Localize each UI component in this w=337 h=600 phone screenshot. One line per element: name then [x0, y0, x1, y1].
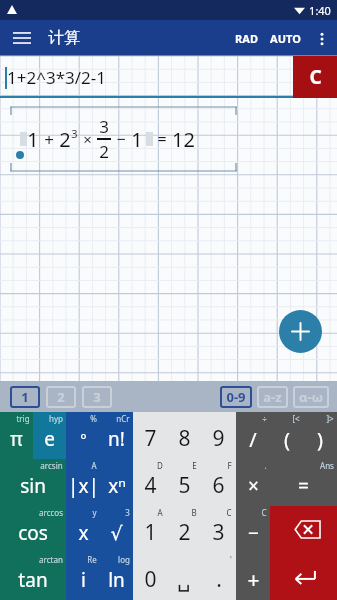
staticText: . — [264, 460, 267, 471]
staticText: 3 — [93, 388, 101, 406]
button[interactable]: trig — [0, 412, 33, 459]
button[interactable]: C — [201, 506, 236, 553]
staticText: hyp — [49, 413, 63, 424]
button[interactable]: Add — [279, 310, 322, 353]
button[interactable]: ' — [201, 553, 236, 600]
staticText: ÷ — [262, 413, 267, 424]
staticText: 0-9 — [226, 388, 246, 406]
staticText: ' — [230, 554, 232, 565]
staticText: C — [261, 507, 267, 518]
staticText: 2 — [57, 388, 65, 406]
button[interactable]: ␣ — [167, 553, 201, 600]
button[interactable]: A — [66, 459, 100, 506]
staticText: π — [10, 426, 23, 452]
button[interactable]: xⁿ — [100, 459, 133, 506]
button[interactable]: RAD — [229, 23, 264, 54]
staticText: 6 — [212, 471, 225, 500]
staticText: 1:40 — [309, 3, 331, 18]
button[interactable]: log — [100, 553, 133, 600]
button[interactable]: nCr — [100, 412, 133, 459]
staticText: × — [248, 473, 259, 499]
button[interactable]: hyp — [33, 412, 66, 459]
staticText: 3 — [99, 115, 109, 138]
staticText: 9 — [212, 424, 225, 453]
button[interactable]: 1 — [10, 386, 40, 408]
button[interactable]: AUTO — [264, 23, 307, 54]
staticText: = — [298, 473, 309, 499]
button[interactable]: F — [201, 459, 236, 506]
button[interactable]: α-ω — [293, 386, 329, 408]
staticText: 2 — [178, 518, 191, 547]
button[interactable]: A — [133, 506, 167, 553]
staticText: cos — [18, 520, 48, 546]
button[interactable]: ]> — [303, 412, 337, 459]
staticText: 1 — [27, 126, 39, 153]
button[interactable]: 8 — [167, 412, 201, 459]
staticText: + — [44, 128, 54, 151]
staticText: |x| — [68, 473, 99, 499]
button[interactable]: B — [167, 506, 201, 553]
button[interactable]: 1+2^3*3/2-1 — [0, 56, 293, 98]
staticText: xⁿ — [108, 473, 126, 499]
button[interactable]: 1 — [10, 106, 237, 172]
staticText: arctan — [39, 554, 63, 565]
button[interactable]: C — [236, 506, 270, 553]
button[interactable]: ÷ — [236, 412, 270, 459]
button[interactable]: 0-9 — [220, 386, 252, 408]
staticText: 1 — [21, 388, 29, 406]
staticText: D — [157, 460, 163, 471]
button[interactable]: 2 — [46, 386, 76, 408]
staticText: F — [227, 460, 232, 471]
button[interactable]: y — [66, 506, 100, 553]
button[interactable]: a-z — [257, 386, 288, 408]
button[interactable]: 3 — [82, 386, 112, 408]
staticText: 1 — [131, 126, 143, 153]
button[interactable]: C — [293, 56, 337, 98]
button[interactable]: 0 — [133, 553, 167, 600]
staticText: [< — [292, 413, 300, 424]
button[interactable]: [< — [270, 412, 303, 459]
button[interactable]: E — [167, 459, 201, 506]
staticText: √ — [110, 522, 123, 544]
staticText: Re — [87, 554, 97, 565]
button[interactable]: More options — [307, 24, 337, 54]
staticText: ␣ — [177, 568, 191, 592]
staticText: 4 — [144, 471, 157, 500]
button[interactable]: 7 — [133, 412, 167, 459]
staticText: AUTO — [270, 31, 301, 46]
button[interactable]: Backspace — [270, 506, 337, 553]
button[interactable]: 9 — [201, 412, 236, 459]
staticText: ° — [80, 429, 87, 449]
staticText: . — [216, 565, 222, 594]
staticText: α-ω — [299, 388, 323, 406]
staticText: e — [44, 426, 55, 452]
staticText: A — [91, 460, 97, 471]
staticText: % — [90, 413, 97, 424]
staticText: ( — [284, 426, 290, 453]
staticText: 1+2^3*3/2-1 — [7, 66, 106, 89]
staticText: ]> — [326, 413, 334, 424]
button[interactable]: Re — [66, 553, 100, 600]
button[interactable]: Menu — [8, 24, 36, 52]
staticText: 1 — [144, 518, 157, 547]
button[interactable]: D — [133, 459, 167, 506]
button[interactable]: % — [66, 412, 100, 459]
staticText: a-z — [263, 388, 282, 406]
staticText: − — [116, 128, 126, 150]
button[interactable]: . — [236, 459, 270, 506]
staticText: RAD — [235, 31, 258, 46]
button[interactable]: Enter — [270, 553, 337, 600]
staticText: 0 — [144, 565, 157, 594]
button[interactable]: arctan — [0, 553, 66, 600]
staticText: 2 — [99, 140, 109, 163]
staticText: × — [83, 129, 92, 149]
staticText: ) — [317, 426, 323, 453]
button[interactable]: + — [236, 553, 270, 600]
staticText: 3 — [71, 126, 78, 141]
staticText: 8 — [178, 424, 191, 453]
button[interactable]: arcsin — [0, 459, 66, 506]
button[interactable]: Ans — [270, 459, 337, 506]
button[interactable]: 3 — [100, 506, 133, 553]
staticText: E — [192, 460, 197, 471]
button[interactable]: arccos — [0, 506, 66, 553]
